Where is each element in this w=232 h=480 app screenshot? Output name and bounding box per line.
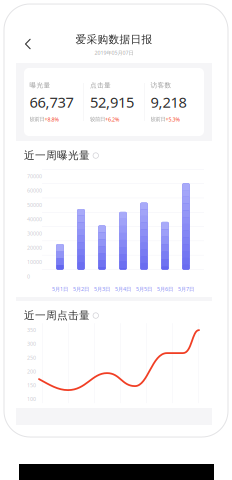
- staticText: 5月7日: [178, 285, 194, 293]
- staticText: 350: [27, 326, 36, 334]
- staticText: 较前日: [90, 116, 105, 123]
- staticText: 300: [27, 340, 36, 347]
- staticText: 200: [27, 368, 36, 375]
- staticText: 近一周曝光量: [24, 149, 90, 162]
- staticText: 曝光量: [29, 81, 50, 89]
- staticText: 150: [27, 382, 36, 389]
- button[interactable]: Back: [17, 33, 39, 55]
- staticText: 2019年05月07日: [94, 49, 133, 56]
- staticText: 9,218: [150, 92, 186, 112]
- staticText: 较前日: [150, 116, 165, 123]
- staticText: 66,737: [29, 92, 73, 112]
- staticText: 较前日: [29, 116, 44, 123]
- staticText: 爱采购数据日报: [75, 33, 152, 46]
- staticText: 5月1日: [52, 285, 68, 293]
- staticText: 0: [27, 273, 30, 280]
- staticText: 5月3日: [94, 285, 110, 293]
- staticText: 60000: [27, 187, 42, 194]
- staticText: 近一周点击量: [24, 309, 90, 322]
- staticText: 20000: [27, 244, 42, 251]
- staticText: 10000: [27, 258, 42, 266]
- staticText: +8.8%: [44, 116, 58, 123]
- staticText: +5.3%: [165, 116, 179, 123]
- staticText: 100: [27, 395, 36, 403]
- staticText: 52,915: [90, 92, 134, 112]
- staticText: 250: [27, 354, 36, 361]
- staticText: 70000: [27, 173, 42, 180]
- staticText: 30000: [27, 230, 42, 237]
- staticText: +6.2%: [105, 116, 119, 123]
- staticText: 5月2日: [73, 285, 89, 293]
- staticText: 5月5日: [136, 285, 152, 293]
- staticText: 5月6日: [157, 285, 173, 293]
- staticText: 点击量: [90, 81, 111, 89]
- staticText: 访客数: [150, 81, 171, 89]
- staticText: 40000: [27, 216, 42, 223]
- staticText: 50000: [27, 201, 42, 208]
- staticText: 5月4日: [115, 285, 131, 293]
